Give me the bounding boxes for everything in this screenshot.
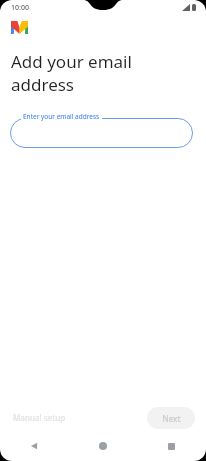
button[interactable]: Home: [68, 435, 137, 457]
staticText: Enter your email address: [23, 112, 100, 121]
button[interactable]: Recent apps: [137, 435, 206, 457]
staticText: Manual setup: [13, 412, 66, 423]
button[interactable]: Next: [147, 407, 195, 429]
staticText: Next: [162, 413, 181, 424]
staticText: Add your email address: [11, 50, 132, 96]
button[interactable]: Enter your email address: [10, 112, 193, 148]
staticText: 10:00: [11, 3, 29, 13]
button[interactable]: Manual setup: [7, 406, 72, 429]
button[interactable]: Back: [0, 435, 68, 457]
